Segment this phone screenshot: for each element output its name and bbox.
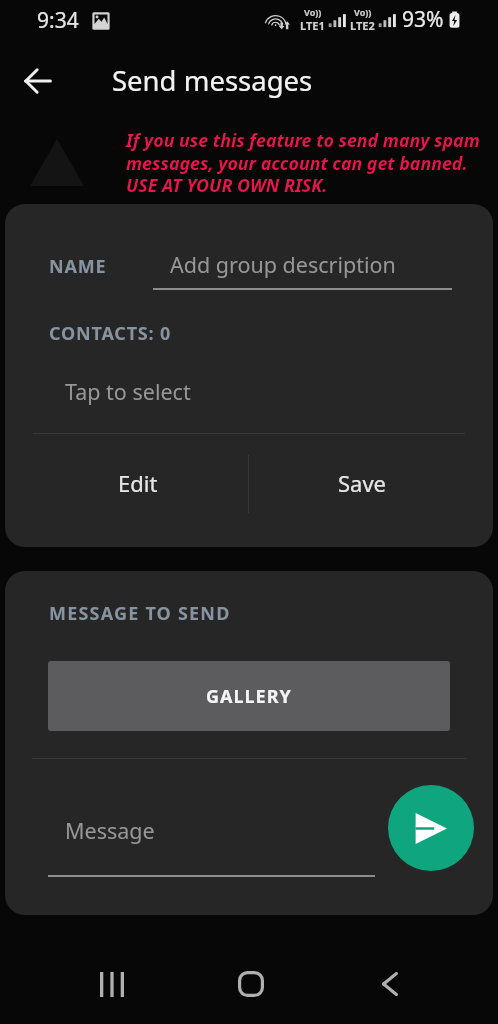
staticText: If you use this feature to send many spa… (126, 128, 480, 197)
staticText: Message (65, 816, 155, 845)
staticText: Add group description (170, 250, 396, 279)
staticText: 9:34 (37, 6, 79, 35)
staticText: NAME (49, 254, 107, 279)
button[interactable]: Edit (27, 434, 249, 531)
button[interactable]: Recents (65, 938, 158, 1024)
staticText: Tap to select (65, 377, 191, 406)
button[interactable]: GALLERY (48, 661, 450, 731)
button[interactable]: Tap to select (35, 369, 463, 413)
button[interactable]: Back (343, 938, 436, 1024)
button[interactable]: Home (204, 938, 297, 1024)
staticText: MESSAGE TO SEND (49, 601, 231, 626)
staticText: GALLERY (206, 684, 292, 709)
staticText: CONTACTS: 0 (49, 321, 171, 346)
button[interactable]: Send (388, 785, 474, 871)
staticText: Edit (118, 468, 158, 498)
staticText: 93% (402, 5, 444, 34)
staticText: Save (338, 468, 387, 498)
staticText: Vo)) (304, 6, 322, 18)
staticText: LTE1 (300, 18, 325, 33)
staticText: LTE2 (350, 18, 375, 33)
staticText: Vo)) (354, 6, 372, 18)
staticText: Send messages (112, 62, 313, 99)
button[interactable]: Back (13, 56, 63, 106)
button[interactable]: Save (249, 434, 475, 531)
